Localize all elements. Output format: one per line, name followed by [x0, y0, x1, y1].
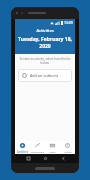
button[interactable]: Home	[40, 154, 50, 163]
staticText: Profile	[64, 150, 72, 153]
staticText: Add an outburst	[30, 73, 59, 78]
button[interactable]: Dashboard	[30, 141, 45, 154]
staticText: Learn	[49, 150, 56, 153]
staticText: 13:09	[64, 20, 73, 25]
button[interactable]: Learn	[45, 141, 60, 154]
staticText: Tuesday, February 18, 2020	[15, 36, 75, 50]
button[interactable]: Recents	[23, 154, 33, 163]
button[interactable]: Profile	[60, 141, 75, 154]
staticText: Dashboard	[31, 150, 44, 153]
staticText: Activities	[17, 150, 28, 153]
button[interactable]: Back	[58, 154, 68, 163]
staticText: Activities	[36, 28, 54, 33]
button[interactable]: Add an outburst	[18, 69, 72, 82]
button[interactable]: Activities	[15, 141, 30, 154]
staticText: To start an activity, select from the li…	[18, 57, 72, 65]
